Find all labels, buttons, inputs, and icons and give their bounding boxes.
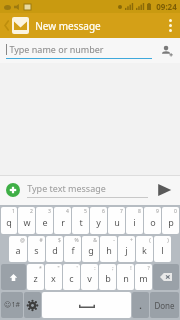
staticText: % [74,237,79,244]
button[interactable]: Backspace [153,264,179,290]
button[interactable]: # [28,236,45,262]
button[interactable]: Keyboard settings [24,292,41,318]
staticText: t [79,216,83,228]
button[interactable]: - [100,236,117,262]
staticText: y [96,216,101,228]
staticText: z [33,272,38,284]
staticText: @ [20,237,25,244]
staticText: o [150,216,156,228]
staticText: ? [147,265,150,272]
button[interactable]: Type text message [27,182,148,198]
staticText: a [15,244,21,256]
staticText: # [39,237,43,244]
staticText: 6 [102,208,105,215]
button[interactable]: 0 [162,207,179,234]
staticText: r [61,216,65,228]
button[interactable]: : [81,264,98,290]
staticText: Type name or number [9,43,104,55]
staticText: s [34,244,39,256]
staticText: f [71,244,75,256]
staticText: 9 [156,208,159,215]
staticText: - [113,237,115,244]
button[interactable]: @ [9,236,27,262]
staticText: 7 [120,208,123,215]
staticText: i [133,216,136,228]
staticText: * [39,265,42,272]
button[interactable]: " [45,264,62,290]
button[interactable]: Type name or number [6,43,152,59]
button[interactable]: ? [135,264,152,290]
staticText: ) [167,237,169,244]
staticText: + [130,237,133,244]
button[interactable]: 4 [54,207,71,234]
staticText: n [123,272,129,284]
button[interactable]: ) [154,236,171,262]
staticText: . [139,299,142,311]
staticText: " [57,265,60,272]
staticText: ! [130,265,132,272]
staticText: w [23,216,31,228]
staticText: h [106,244,112,256]
staticText: 2 [30,208,33,215]
staticText: d [52,244,58,256]
staticText: g [88,244,94,256]
button[interactable]: ; [99,264,116,290]
staticText: 8 [138,208,141,215]
button[interactable]: 5 [72,207,89,234]
staticText: 3 [48,208,51,215]
button[interactable]: Done [150,292,179,318]
button[interactable]: ( [136,236,153,262]
staticText: New message [35,19,101,33]
staticText: q [6,216,12,228]
staticText: ☺1# [4,300,20,310]
button[interactable]: More options [160,13,180,38]
button[interactable]: $ [46,236,63,262]
staticText: x [51,272,56,284]
button[interactable]: Send [153,179,175,201]
staticText: ( [149,237,151,244]
button[interactable]: 9 [144,207,161,234]
staticText: v [87,272,92,284]
button[interactable]: % [64,236,81,262]
staticText: k [142,244,147,256]
staticText: c [69,272,74,284]
staticText: Type text message [27,182,106,194]
button[interactable]: 3 [36,207,53,234]
button[interactable]: 7 [108,207,125,234]
button[interactable]: 1 [1,207,17,234]
staticText: ; [112,265,114,272]
button[interactable]: & [82,236,99,262]
staticText: p [168,216,174,228]
staticText: e [42,216,48,228]
button[interactable]: Add contact [158,42,176,60]
staticText: b [105,272,111,284]
staticText: & [93,237,97,244]
staticText: u [114,216,120,228]
staticText: $ [58,237,61,244]
button[interactable]: 2 [18,207,35,234]
button[interactable]: 8 [126,207,143,234]
staticText: 5 [84,208,87,215]
button[interactable]: Shift [1,264,26,290]
staticText: ' [76,265,78,272]
staticText: l [161,244,164,256]
staticText: j [125,244,128,256]
staticText: 09:24 [156,1,177,12]
staticText: 1 [12,208,15,215]
staticText: : [94,265,96,272]
staticText: 0 [174,208,177,215]
button[interactable]: Back [0,13,12,38]
staticText: 4 [66,208,69,215]
button[interactable]: Add attachment [5,182,21,198]
staticText: Done [154,300,175,311]
staticText: m [139,272,148,284]
button[interactable]: * [27,264,44,290]
button[interactable]: ! [117,264,134,290]
button[interactable]: ' [63,264,80,290]
button[interactable]: + [118,236,135,262]
button[interactable]: 6 [90,207,107,234]
button[interactable]: Period [132,292,149,318]
button[interactable]: Symbols [1,292,23,318]
button[interactable]: Space [42,292,131,318]
